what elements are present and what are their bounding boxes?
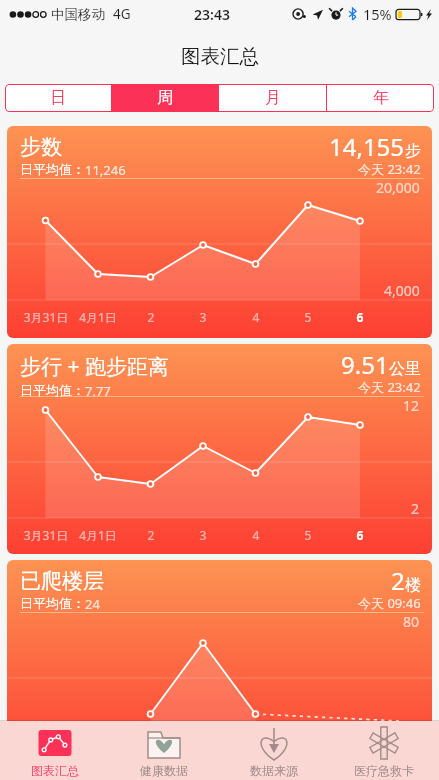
staticText: 数据来源 <box>250 763 298 778</box>
staticText: 5 <box>282 743 334 759</box>
staticText: 周 <box>157 88 173 108</box>
staticText: 日 <box>50 88 66 108</box>
button[interactable]: 图表汇总 <box>0 721 109 780</box>
staticText: 4 <box>230 527 282 543</box>
staticText: 月 <box>265 88 281 108</box>
staticText: 5 <box>282 309 334 325</box>
staticText: 3月31日 <box>20 527 72 543</box>
staticText: 日平均值： <box>20 382 85 398</box>
staticText: 2 <box>125 743 177 759</box>
staticText: 11,246 <box>85 161 126 179</box>
staticText: 步 <box>405 141 421 161</box>
button[interactable]: 日 <box>5 84 111 112</box>
staticText: 9.51 <box>341 348 389 381</box>
staticText: 4月1日 <box>72 309 124 325</box>
staticText: 步数 <box>20 134 62 160</box>
staticText: 已爬楼层 <box>20 568 104 594</box>
button[interactable]: 周 <box>112 84 218 112</box>
staticText: 6 <box>334 527 386 543</box>
staticText: 6 <box>334 309 386 325</box>
staticText: 今天 23:42 <box>358 160 421 178</box>
button[interactable]: 年 <box>327 84 434 112</box>
staticText: 2 <box>391 564 405 597</box>
staticText: 4 <box>230 743 282 759</box>
staticText: 4 <box>230 309 282 325</box>
staticText: 日平均值： <box>20 595 85 611</box>
staticText: 2 <box>125 527 177 543</box>
staticText: 医疗急救卡 <box>354 763 414 778</box>
staticText: 12 <box>403 396 420 415</box>
staticText: 4月1日 <box>72 527 124 543</box>
staticText: 今天 09:46 <box>358 594 421 612</box>
button[interactable]: 已爬楼层 <box>7 560 432 770</box>
staticText: 3 <box>177 527 229 543</box>
staticText: 今天 23:42 <box>358 378 421 396</box>
button[interactable]: 步行 + 跑步距离 <box>7 344 432 554</box>
other: 数据来源 <box>256 728 292 758</box>
staticText: 3月31日 <box>20 309 72 325</box>
staticText: 楼 <box>405 575 421 595</box>
staticText: 公里 <box>389 359 421 379</box>
staticText: 80 <box>403 612 420 631</box>
staticText: 3月31日 <box>20 743 72 759</box>
button[interactable]: 月 <box>219 84 326 112</box>
staticText: 日平均值： <box>20 161 85 177</box>
staticText: 3 <box>177 743 229 759</box>
staticText: 图表汇总 <box>31 763 79 778</box>
staticText: 4G <box>113 5 131 23</box>
button[interactable]: 步数 <box>7 126 432 338</box>
staticText: 20,000 <box>376 178 420 197</box>
staticText: 图表汇总 <box>181 44 259 69</box>
staticText: 3 <box>177 309 229 325</box>
staticText: 年 <box>373 88 389 108</box>
staticText: 14,155 <box>329 130 405 163</box>
staticText: 2 <box>125 309 177 325</box>
button[interactable]: 数据来源 <box>219 721 329 780</box>
staticText: 15% <box>363 4 392 24</box>
staticText: 7.77 <box>85 382 111 400</box>
other: 医疗急救卡 <box>366 728 402 758</box>
other: 图表汇总 <box>37 728 73 758</box>
staticText: 健康数据 <box>140 763 188 778</box>
staticText: 5 <box>282 527 334 543</box>
button[interactable]: 医疗急救卡 <box>329 721 439 780</box>
staticText: 2 <box>411 499 420 518</box>
button[interactable]: 健康数据 <box>109 721 219 780</box>
staticText: 中国移动 <box>51 6 105 23</box>
staticText: 4,000 <box>384 281 420 300</box>
staticText: 步行 + 跑步距离 <box>20 352 169 381</box>
staticText: 6 <box>334 743 386 759</box>
other: 健康数据 <box>146 728 182 758</box>
staticText: 24 <box>85 595 100 613</box>
staticText: 23:43 <box>194 5 230 24</box>
